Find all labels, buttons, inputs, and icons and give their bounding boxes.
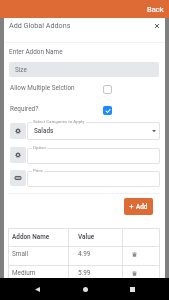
button[interactable]: Delete — [128, 267, 140, 279]
button[interactable] — [27, 122, 160, 140]
staticText: Required? — [10, 105, 39, 113]
staticText: 4.99 — [78, 250, 91, 258]
staticText: Small — [12, 250, 28, 258]
staticText: Allow Multiple Selction — [10, 84, 75, 92]
button[interactable]: Delete — [128, 248, 140, 260]
staticText: Size — [15, 66, 27, 74]
staticText: Price — [33, 168, 43, 173]
button[interactable] — [27, 148, 160, 164]
staticText: Option — [33, 145, 46, 150]
staticText: Medium — [12, 269, 36, 277]
button[interactable]: Price — [10, 170, 26, 186]
button[interactable]: Allow Multiple Selction — [103, 85, 112, 94]
staticText: Back — [147, 5, 164, 14]
staticText: Select Categories to Apply — [33, 119, 85, 124]
button[interactable]: Back — [27, 279, 47, 299]
button[interactable]: Option — [10, 147, 26, 163]
staticText: Salads — [34, 127, 54, 135]
button[interactable]: Select Categories to Apply — [10, 123, 26, 139]
button[interactable]: Size — [9, 62, 159, 77]
staticText: Value — [78, 233, 95, 241]
staticText: Enter Addon Name — [9, 48, 63, 56]
button[interactable]: Required — [103, 106, 112, 115]
staticText: Add — [136, 203, 148, 211]
button[interactable]: Add — [124, 198, 153, 215]
staticText: Addon Name — [12, 233, 50, 241]
staticText: 5.99 — [78, 269, 91, 277]
staticText: Add Global Addons — [9, 21, 71, 29]
button[interactable]: Home — [75, 279, 95, 299]
button[interactable] — [27, 171, 160, 187]
button[interactable]: Close — [150, 19, 163, 32]
button[interactable]: Recents — [122, 279, 142, 299]
